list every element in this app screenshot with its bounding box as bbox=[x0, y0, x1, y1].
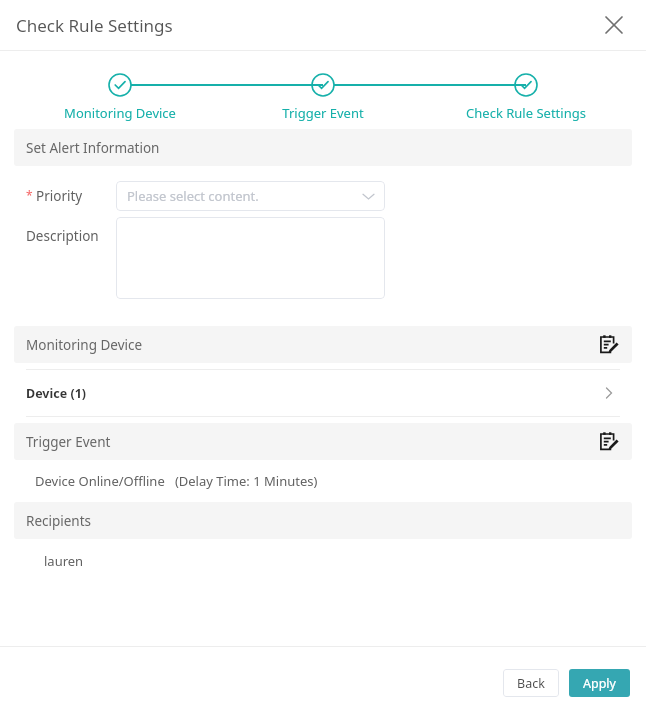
staticText: Please select content. bbox=[127, 187, 259, 205]
staticText: Monitoring Device bbox=[40, 104, 200, 122]
staticText: Check Rule Settings bbox=[446, 104, 606, 122]
staticText: Back bbox=[517, 675, 545, 692]
staticText: Trigger Event bbox=[26, 433, 111, 451]
staticText: lauren bbox=[44, 552, 84, 570]
button[interactable]: Apply bbox=[569, 669, 630, 697]
staticText: Trigger Event bbox=[243, 104, 403, 122]
button[interactable]: Trigger Event bbox=[14, 423, 632, 460]
staticText: Description bbox=[26, 227, 99, 245]
button[interactable]: Recipients bbox=[14, 502, 632, 539]
staticText: Priority bbox=[36, 187, 83, 205]
staticText: Device Online/Offline (Delay Time: 1 Min… bbox=[35, 472, 318, 490]
button[interactable]: Edit Trigger Event bbox=[594, 427, 624, 457]
staticText: Apply bbox=[583, 675, 616, 692]
staticText: Check Rule Settings bbox=[16, 14, 173, 37]
staticText: Device (1) bbox=[26, 385, 87, 402]
button[interactable]: Device (1) bbox=[0, 370, 646, 416]
button[interactable]: Please select content. bbox=[116, 181, 385, 211]
staticText: * bbox=[26, 187, 33, 203]
staticText: Set Alert Information bbox=[26, 139, 160, 157]
button[interactable] bbox=[116, 217, 385, 299]
staticText: Recipients bbox=[26, 512, 92, 530]
button[interactable]: Close bbox=[600, 11, 628, 39]
button[interactable]: Monitoring Device bbox=[14, 326, 632, 363]
staticText: Monitoring Device bbox=[26, 336, 143, 354]
button[interactable]: Edit Monitoring Device bbox=[594, 330, 624, 360]
button[interactable]: Back bbox=[503, 669, 559, 697]
